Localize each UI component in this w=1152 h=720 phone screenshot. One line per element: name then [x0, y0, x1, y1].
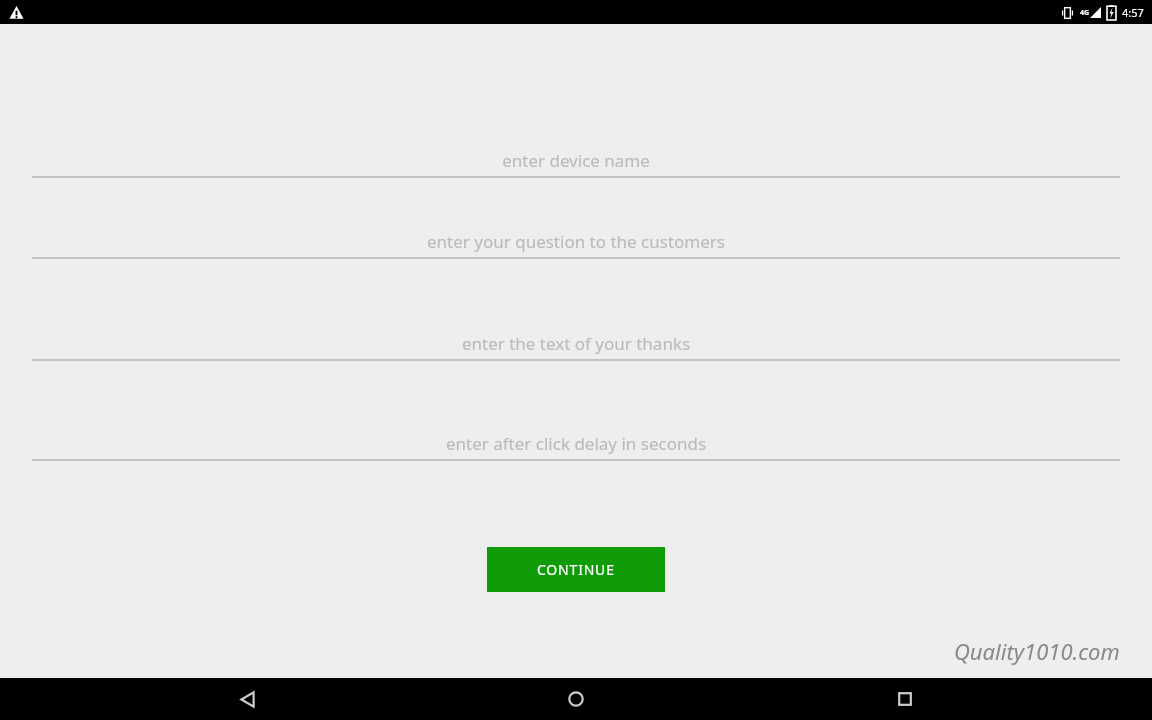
button[interactable]: Recent apps — [768, 678, 1152, 720]
button[interactable]: Home — [384, 678, 768, 720]
button[interactable]: enter your question to the customers — [32, 178, 1120, 259]
staticText: enter after click delay in seconds — [32, 432, 1120, 455]
button[interactable]: enter device name — [32, 24, 1120, 178]
staticText: Quality1010.com — [954, 636, 1120, 666]
button[interactable]: enter after click delay in seconds — [32, 361, 1120, 461]
button[interactable]: enter the text of your thanks — [32, 259, 1120, 361]
staticText: 4G — [1080, 8, 1090, 18]
staticText: enter device name — [32, 149, 1120, 172]
staticText: enter your question to the customers — [32, 230, 1120, 253]
button[interactable]: Back — [0, 678, 384, 720]
staticText: CONTINUE — [537, 560, 615, 579]
staticText: 4:57 — [1122, 5, 1144, 20]
button[interactable]: CONTINUE — [487, 547, 665, 592]
staticText: enter the text of your thanks — [32, 332, 1120, 355]
